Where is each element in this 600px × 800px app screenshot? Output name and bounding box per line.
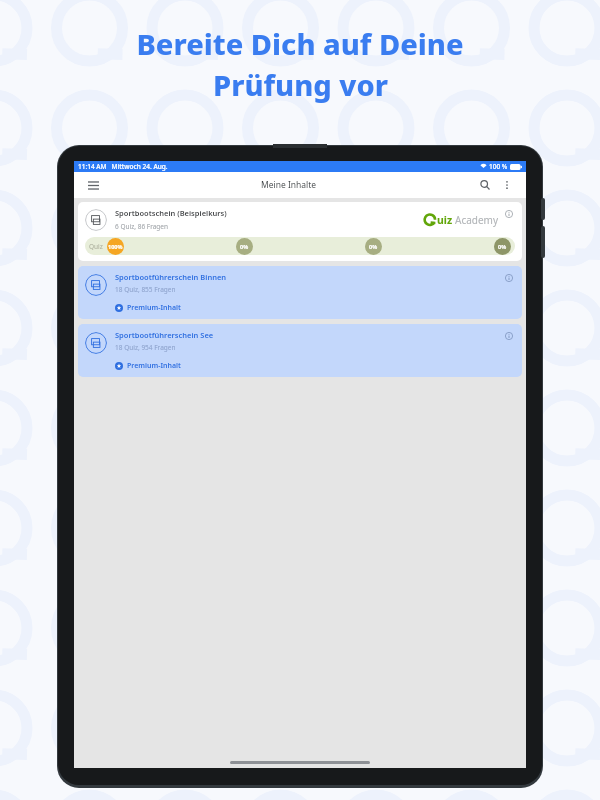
button[interactable]: 100% (107, 238, 124, 255)
button[interactable]: 0% (365, 238, 382, 255)
button[interactable]: Sportbootführerschein See (78, 324, 522, 377)
button[interactable]: Info (503, 208, 515, 220)
button[interactable]: Search (476, 176, 494, 194)
button[interactable]: Sportbootschein (Beispielkurs) (78, 202, 522, 261)
button[interactable]: More options (498, 176, 516, 194)
staticText: 0% (369, 243, 378, 250)
staticText: Meine Inhalte (261, 179, 317, 191)
staticText: Bereite Dich auf Deine (136, 24, 464, 63)
staticText: Sportbootführerschein Binnen (115, 272, 227, 282)
button[interactable]: 0% (494, 238, 511, 255)
staticText: 0% (240, 243, 249, 250)
button[interactable] (85, 209, 107, 231)
staticText: 100% (108, 243, 123, 250)
button[interactable]: Sportbootführerschein Binnen (78, 266, 522, 319)
staticText: Premium-Inhalt (127, 303, 181, 313)
staticText: 18 Quiz, 954 Fragen (115, 343, 176, 352)
staticText: Quiz (89, 242, 103, 251)
button[interactable]: 0% (236, 238, 253, 255)
staticText: Prüfung vor (213, 65, 388, 104)
button[interactable]: Menu (84, 176, 102, 194)
staticText: Sportbootschein (Beispielkurs) (115, 208, 227, 218)
staticText: Premium-Inhalt (127, 361, 181, 371)
staticText: 18 Quiz, 855 Fragen (115, 285, 176, 294)
staticText: 6 Quiz, 86 Fragen (115, 222, 169, 231)
button[interactable] (85, 274, 107, 296)
button[interactable] (85, 332, 107, 354)
staticText: 100 % (489, 162, 508, 171)
staticText: Academy (455, 213, 499, 227)
staticText: 0% (498, 243, 507, 250)
staticText: 11:14 AM Mittwoch 24. Aug. (78, 162, 168, 171)
button[interactable]: Info (503, 330, 515, 342)
button[interactable]: Info (503, 272, 515, 284)
staticText: uiz (437, 213, 453, 227)
staticText: Sportbootführerschein See (115, 330, 214, 340)
